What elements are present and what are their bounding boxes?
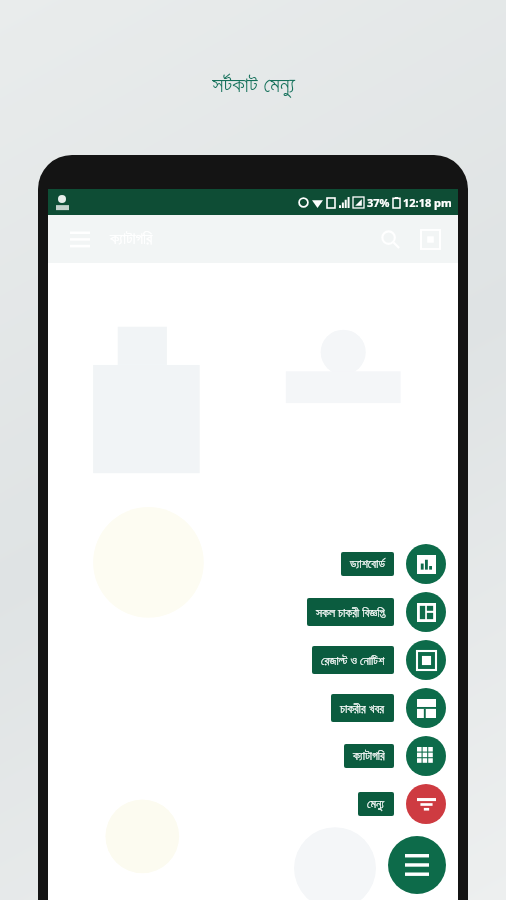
button[interactable]: সকল চাকরী বিজ্ঞপ্তি (307, 598, 394, 626)
button[interactable]: Open shortcut menu (388, 836, 446, 894)
staticText: 12:18 pm (403, 195, 452, 210)
button[interactable]: Notifications (410, 219, 450, 259)
button[interactable]: মেন্যু (406, 784, 446, 824)
button[interactable]: ক্যাটাগরি (344, 744, 394, 768)
button[interactable]: চাকরীর খবর (406, 688, 446, 728)
staticText: সকল চাকরী বিজ্ঞপ্তি (316, 604, 385, 620)
staticText: ক্যাটাগরি (353, 750, 385, 762)
button[interactable]: ড্যাশবোর্ড (341, 552, 394, 576)
staticText: রেজাল্ট ও নোটিশ (321, 652, 385, 668)
staticText: 37% (367, 195, 390, 210)
button[interactable]: Open navigation menu (60, 219, 100, 259)
staticText: ড্যাশবোর্ড (350, 558, 385, 570)
button[interactable]: ক্যাটাগরি (406, 736, 446, 776)
staticText: ক্যাটাগরি (110, 231, 153, 247)
button[interactable]: মেন্যু (358, 792, 394, 816)
staticText: চাকরীর খবর (340, 700, 385, 716)
button[interactable]: রেজাল্ট ও নোটিশ (406, 640, 446, 680)
button[interactable]: সকল চাকরী বিজ্ঞপ্তি (406, 592, 446, 632)
button[interactable]: রেজাল্ট ও নোটিশ (312, 646, 394, 674)
button[interactable]: ড্যাশবোর্ড (406, 544, 446, 584)
staticText: সর্টকাট মেন্যু (212, 68, 295, 98)
button[interactable]: চাকরীর খবর (331, 694, 394, 722)
staticText: মেন্যু (367, 798, 385, 810)
